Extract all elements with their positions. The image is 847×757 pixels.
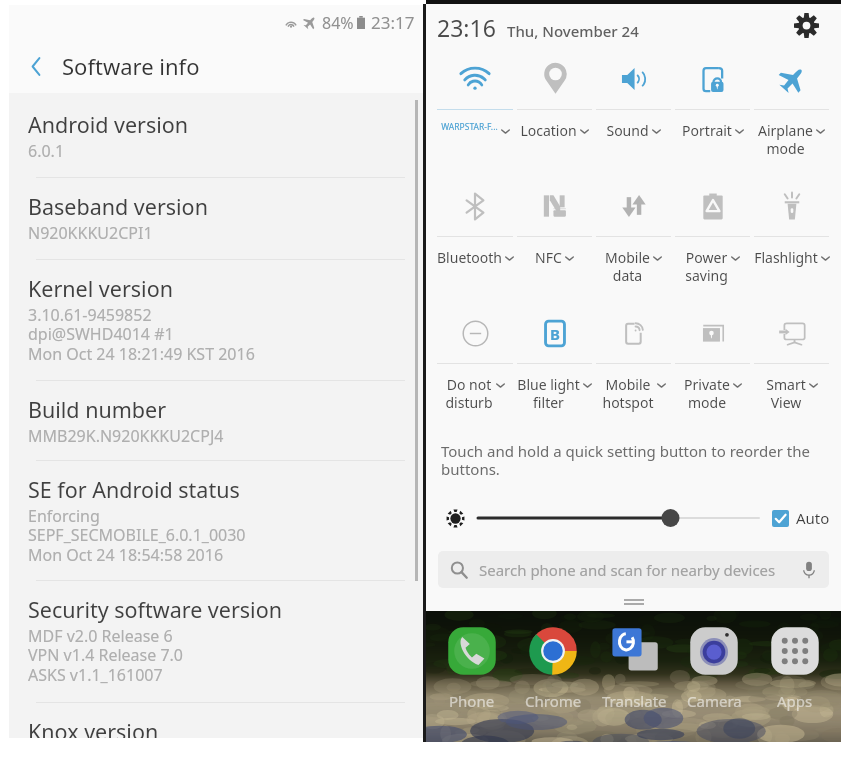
staticText: Search phone and scan for nearby devices — [479, 560, 776, 580]
staticText: Mobile hotspot — [602, 375, 654, 412]
staticText: Kernel version — [28, 274, 173, 303]
button[interactable]: B — [515, 303, 594, 430]
staticText: SE for Android status — [28, 475, 240, 504]
staticText: Sound — [606, 121, 649, 140]
staticText: N920KKKU2CPI1 — [28, 222, 153, 244]
staticText: Knox version — [28, 717, 159, 738]
staticText: Private mode — [684, 375, 730, 412]
button[interactable]: Location — [515, 49, 594, 176]
button[interactable]: Baseband version — [9, 177, 423, 259]
staticText: MMB29K.N920KKKU2CPJ4 — [28, 425, 224, 447]
staticText: Thu, November 24 — [507, 21, 639, 41]
staticText: Enforcing SEPF_SECMOBILE_6.0.1_0030 Mon … — [28, 505, 246, 566]
staticText: WARPSTAR-F... — [441, 121, 498, 133]
staticText: Location — [520, 121, 577, 140]
button[interactable]: Sound — [594, 49, 673, 176]
button[interactable]: Smart View — [752, 303, 831, 430]
staticText: Baseband version — [28, 192, 208, 221]
button[interactable]: Camera — [679, 624, 749, 711]
button[interactable]: Private mode — [673, 303, 752, 430]
button[interactable]: Mobile data — [594, 176, 673, 303]
staticText: Apps — [777, 691, 813, 711]
staticText: Camera — [687, 691, 742, 711]
button[interactable]: Bluetooth — [435, 176, 515, 303]
staticText: MDF v2.0 Release 6 VPN v1.4 Release 7.0 … — [28, 625, 184, 686]
button[interactable]: Knox version — [9, 702, 423, 738]
staticText: Power saving — [685, 248, 728, 285]
staticText: Portrait — [682, 121, 732, 140]
staticText: Security software version — [28, 595, 282, 624]
staticText: Phone — [449, 691, 495, 711]
button[interactable]: Flashlight — [752, 176, 831, 303]
button[interactable]: Airplane mode — [752, 49, 831, 176]
staticText: Flashlight — [754, 248, 818, 267]
staticText: Blue light filter — [517, 375, 580, 412]
staticText: B — [550, 324, 560, 344]
button[interactable]: Build number — [9, 380, 423, 460]
staticText: Bluetooth — [437, 248, 502, 267]
staticText: 23:17 — [371, 11, 415, 34]
staticText: Smart View — [766, 375, 806, 412]
button[interactable]: Do not disturb — [435, 303, 515, 430]
button[interactable]: Power saving — [673, 176, 752, 303]
button[interactable]: NFC — [515, 176, 594, 303]
button[interactable]: SE for Android status — [9, 460, 423, 580]
staticText: Android version — [28, 110, 189, 139]
button[interactable]: Portrait — [673, 49, 752, 176]
button[interactable]: Mobile hotspot — [594, 303, 673, 430]
button[interactable]: Search phone and scan for nearby devices — [438, 551, 829, 588]
button[interactable]: Phone — [437, 624, 507, 711]
button[interactable]: Chrome — [518, 624, 588, 711]
staticText: Airplane mode — [758, 121, 813, 158]
button[interactable]: Translate — [599, 624, 669, 711]
staticText: Software info — [62, 51, 200, 81]
button[interactable]: Settings — [789, 8, 823, 42]
staticText: 23:16 — [437, 12, 496, 43]
staticText: Build number — [28, 395, 167, 424]
staticText: Translate — [602, 691, 667, 711]
button[interactable]: Back — [9, 47, 62, 85]
staticText: 6.0.1 — [28, 140, 65, 162]
staticText: Auto — [796, 508, 830, 528]
staticText: Mobile data — [605, 248, 650, 285]
staticText: NFC — [535, 248, 562, 267]
staticText: Chrome — [525, 691, 582, 711]
button[interactable]: Android version — [9, 93, 423, 177]
staticText: 84% — [322, 12, 354, 34]
button[interactable]: Kernel version — [9, 259, 423, 380]
staticText: Do not disturb — [445, 375, 493, 412]
button[interactable]: WARPSTAR-F... — [435, 49, 515, 176]
button[interactable]: Auto — [772, 508, 830, 528]
button[interactable]: Security software version — [9, 580, 423, 702]
button[interactable]: Apps — [760, 624, 830, 711]
button[interactable] — [478, 507, 759, 529]
staticText: 3.10.61-9459852 dpi@SWHD4014 #1 Mon Oct … — [28, 304, 255, 365]
staticText: Touch and hold a quick setting button to… — [441, 441, 825, 480]
